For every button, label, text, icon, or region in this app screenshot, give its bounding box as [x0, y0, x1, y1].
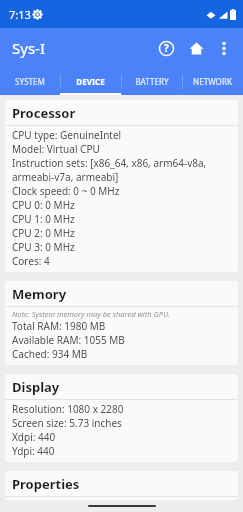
staticText: Available RAM: 1055 MB	[12, 333, 125, 347]
button[interactable]: Home	[181, 33, 211, 63]
staticText: Model: Virtual CPU	[12, 142, 100, 156]
staticText: Screen size: 5.73 inches	[12, 416, 122, 430]
staticText: Resolution: 1080 x 2280	[12, 402, 124, 416]
staticText: Ydpi: 440	[12, 444, 55, 458]
button[interactable]: BATTERY	[121, 68, 182, 95]
staticText: Instruction sets: [x86_64, x86, arm64-v8…	[12, 156, 207, 170]
button[interactable]: DEVICE	[60, 68, 121, 95]
staticText: CPU 1: 0 MHz	[12, 212, 75, 226]
staticText: Xdpi: 440	[12, 430, 56, 444]
button[interactable]: SYSTEM	[0, 68, 60, 95]
button[interactable]: Display	[5, 374, 238, 462]
staticText: 7:13	[9, 7, 31, 22]
staticText: Note: System memory may be shared with G…	[12, 309, 170, 319]
staticText: SYSTEM	[15, 76, 45, 87]
button[interactable]: Memory	[5, 281, 238, 365]
staticText: Clock speed: 0 ~ 0 MHz	[12, 184, 120, 198]
staticText: CPU type: GenuineIntel	[12, 128, 122, 142]
button[interactable]: Help	[151, 33, 181, 63]
staticText: Cores: 4	[12, 254, 50, 268]
staticText: ?	[164, 41, 169, 55]
staticText: Sys-I	[12, 38, 45, 58]
staticText: Total RAM: 1980 MB	[12, 319, 106, 333]
staticText: Processor	[12, 104, 76, 122]
staticText: Memory	[12, 285, 67, 303]
staticText: NETWORK	[193, 76, 232, 87]
staticText: CPU 3: 0 MHz	[12, 240, 75, 254]
button[interactable]: Processor	[5, 100, 238, 272]
staticText: CPU 0: 0 MHz	[12, 198, 75, 212]
staticText: DEVICE	[76, 76, 105, 87]
staticText: Properties	[12, 475, 80, 493]
button[interactable]: Properties	[5, 471, 238, 500]
staticText: BATTERY	[135, 76, 169, 87]
button[interactable]: NETWORK	[182, 68, 243, 95]
staticText: Display	[12, 378, 60, 396]
staticText: Cached: 934 MB	[12, 347, 88, 361]
staticText: CPU 2: 0 MHz	[12, 226, 75, 240]
button[interactable]: More options	[211, 35, 237, 61]
staticText: armeabi-v7a, armeabi]	[12, 170, 119, 184]
